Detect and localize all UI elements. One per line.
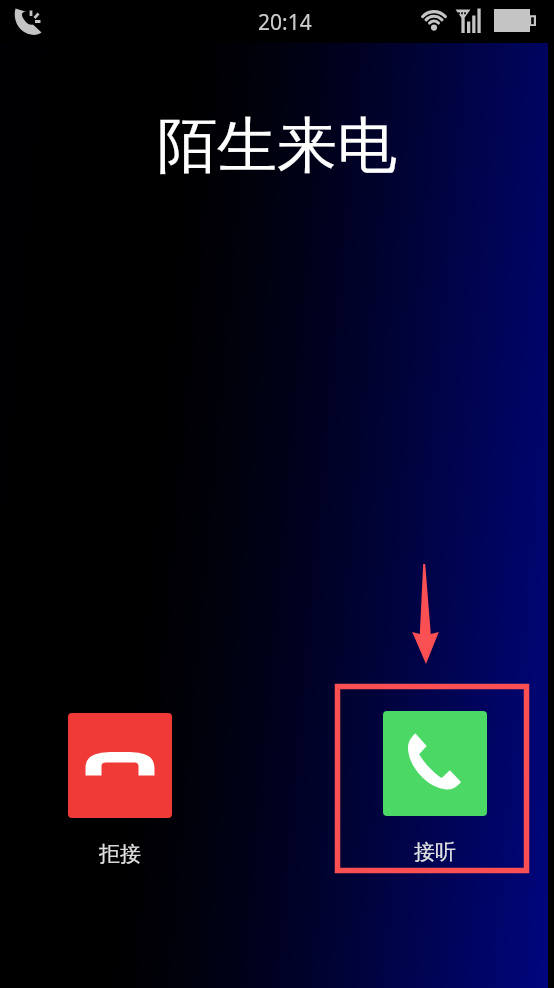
staticText: 拒接 — [99, 841, 141, 867]
button[interactable]: 接听 Answer call — [383, 711, 487, 865]
staticText: 20:14 — [258, 8, 312, 37]
staticText: 陌生来电 — [157, 108, 397, 184]
button[interactable]: 拒接 Decline call — [68, 713, 172, 867]
staticText: 接听 — [414, 839, 456, 865]
